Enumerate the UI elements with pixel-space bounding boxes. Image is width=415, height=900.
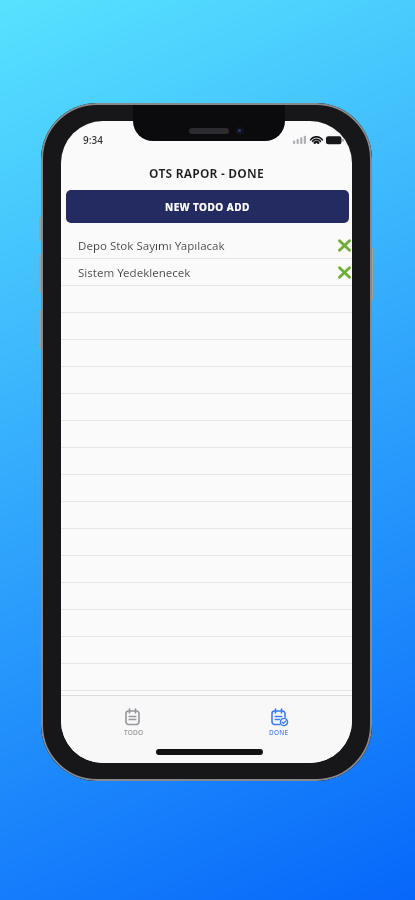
button[interactable]: Sistem Yedeklenecek [61,259,352,286]
staticText: 9:34 [83,133,103,147]
button[interactable]: NEW TODO ADD [66,190,349,223]
staticText: Sistem Yedeklenecek [78,265,191,281]
button[interactable]: DONE [206,695,352,745]
staticText: DONE [269,728,289,737]
staticText: Depo Stok Sayımı Yapılacak [78,238,225,254]
button[interactable]: TODO [61,695,206,745]
staticText: OTS RAPOR - DONE [61,165,352,181]
button[interactable]: Depo Stok Sayımı Yapılacak [61,232,352,259]
staticText: NEW TODO ADD [165,200,250,214]
staticText: TODO [124,728,144,737]
